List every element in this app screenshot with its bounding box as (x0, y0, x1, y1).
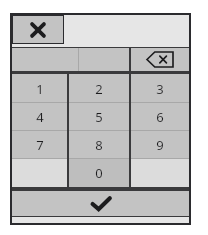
staticText: 2 (95, 80, 103, 98)
button[interactable]: 5 (69, 103, 129, 131)
button[interactable]: Confirm (12, 191, 189, 216)
staticText: 4 (36, 108, 44, 126)
staticText: 3 (156, 80, 164, 98)
staticText: 5 (95, 108, 103, 126)
staticText: 0 (95, 164, 103, 182)
button[interactable]: Close (13, 16, 63, 43)
button[interactable]: 9 (131, 131, 189, 159)
button[interactable]: 8 (69, 131, 129, 159)
button[interactable]: 6 (131, 103, 189, 131)
button[interactable]: 1 (12, 74, 67, 103)
button[interactable]: 3 (131, 74, 189, 103)
staticText: 6 (156, 108, 164, 126)
button[interactable]: 2 (69, 74, 129, 103)
button[interactable]: Backspace (131, 48, 189, 71)
staticText: 7 (36, 136, 44, 154)
staticText: 8 (95, 136, 103, 154)
button[interactable]: 0 (69, 159, 129, 187)
staticText: 9 (156, 136, 164, 154)
button[interactable]: 7 (12, 131, 67, 159)
staticText: 1 (36, 80, 44, 98)
button[interactable]: 4 (12, 103, 67, 131)
